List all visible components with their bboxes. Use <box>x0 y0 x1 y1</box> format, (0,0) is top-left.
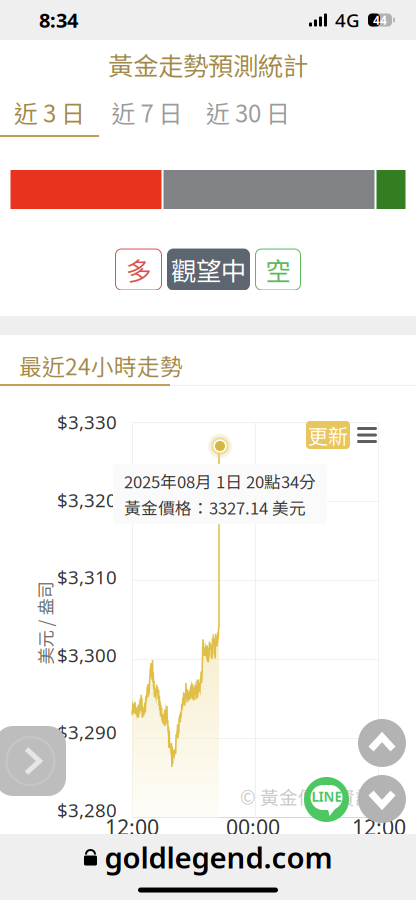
staticText: 44 <box>373 12 387 28</box>
staticText: 更新 <box>308 420 348 449</box>
button[interactable]: Open side panel <box>0 726 66 796</box>
staticText: 黃金價格：3327.14 美元 <box>124 495 306 519</box>
button[interactable]: 更新 <box>306 421 350 449</box>
staticText: 12:00 <box>352 813 406 841</box>
button[interactable]: 觀望中 <box>167 249 249 290</box>
staticText: 12:00 <box>105 813 159 841</box>
staticText: $3,320 <box>57 488 117 512</box>
button[interactable]: 空 <box>255 249 300 290</box>
staticText: 近 30 日 <box>206 95 290 129</box>
button[interactable]: Scroll up <box>358 719 406 767</box>
button[interactable]: 近 7 日 <box>99 89 195 137</box>
button[interactable]: 近 30 日 <box>195 89 301 137</box>
staticText: 8:34 <box>39 7 78 33</box>
staticText: 近 7 日 <box>111 95 182 129</box>
staticText: goldlegend.com <box>104 837 332 876</box>
staticText: $3,310 <box>57 565 117 589</box>
staticText: 近 3 日 <box>14 95 85 129</box>
button[interactable]: Chart menu <box>352 421 382 449</box>
staticText: © 黃金價格資訊站 <box>240 783 393 810</box>
button[interactable]: Share on LINE <box>304 777 349 822</box>
button[interactable]: goldlegend.com <box>0 834 416 880</box>
staticText: 最近24小時走勢 <box>19 349 183 382</box>
staticText: $3,280 <box>57 798 117 822</box>
staticText: 空 <box>265 251 290 288</box>
button[interactable]: 多 <box>115 249 161 290</box>
staticText: 2025年08月 1日 20點34分 <box>124 469 316 493</box>
staticText: LINE <box>311 788 341 805</box>
staticText: 黃金走勢預測統計 <box>108 46 308 83</box>
staticText: $3,300 <box>57 643 117 667</box>
staticText: 觀望中 <box>171 251 246 288</box>
staticText: 多 <box>126 251 151 288</box>
staticText: $3,330 <box>57 410 117 434</box>
button[interactable]: Scroll down <box>358 775 406 823</box>
staticText: $3,290 <box>57 720 117 744</box>
staticText: 4G <box>335 8 360 32</box>
button[interactable]: 近 3 日 <box>0 89 99 137</box>
staticText: 00:00 <box>226 813 280 841</box>
staticText: 美元 / 盎司 <box>3 610 86 636</box>
